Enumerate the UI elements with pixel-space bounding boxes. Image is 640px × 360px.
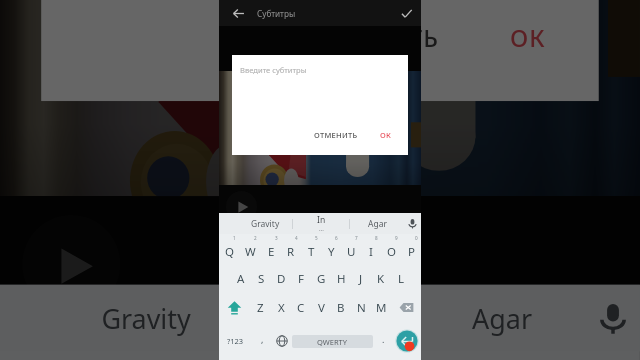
button[interactable]: Back — [225, 0, 251, 26]
staticText: Q — [225, 244, 234, 260]
staticText: . — [382, 333, 385, 345]
button[interactable]: X — [271, 293, 291, 322]
button[interactable]: 3 — [261, 234, 281, 264]
button[interactable]: D — [271, 264, 291, 293]
staticText: ?123 — [227, 336, 244, 346]
button[interactable]: Enter — [393, 322, 421, 360]
staticText: H — [337, 271, 346, 287]
button[interactable]: M — [371, 293, 391, 322]
button[interactable]: In — [234, 285, 412, 351]
button[interactable]: Agar — [350, 213, 404, 234]
button[interactable]: 4 — [196, 351, 260, 360]
button[interactable]: ?123 — [219, 322, 252, 360]
staticText: 5 — [315, 235, 318, 241]
button[interactable]: F — [291, 264, 311, 293]
staticText: 6 — [335, 235, 338, 241]
staticText: In — [317, 214, 326, 226]
staticText: ОТМЕНИТЬ — [301, 22, 440, 53]
button[interactable]: Voice input — [404, 213, 421, 234]
button[interactable]: G — [311, 264, 331, 293]
button[interactable]: 4 — [281, 234, 301, 264]
staticText: ··· — [319, 226, 324, 234]
staticText: C — [297, 300, 305, 316]
button[interactable]: A — [230, 264, 251, 293]
staticText: In — [310, 288, 339, 326]
button[interactable]: 9 — [381, 234, 401, 264]
staticText: D — [277, 271, 286, 287]
button[interactable]: 8 — [361, 234, 381, 264]
staticText: K — [377, 271, 385, 287]
button[interactable]: L — [391, 264, 411, 293]
button[interactable]: 6 — [321, 234, 341, 264]
staticText: F — [298, 271, 304, 287]
staticText: Agar — [368, 218, 387, 230]
button[interactable]: Z — [250, 293, 271, 322]
button[interactable]: C — [291, 293, 311, 322]
button[interactable]: 1 — [219, 234, 240, 264]
staticText: W — [245, 244, 256, 260]
button[interactable]: , — [252, 322, 272, 360]
staticText: L — [398, 271, 405, 287]
button[interactable]: ОТМЕНИТЬ — [288, 12, 453, 63]
button[interactable]: Agar — [415, 285, 586, 351]
button[interactable]: . — [373, 322, 393, 360]
button[interactable]: Voice input — [586, 285, 640, 351]
button[interactable]: Shift — [219, 293, 250, 322]
button[interactable]: 7 — [386, 351, 450, 360]
button[interactable]: Gravity — [239, 213, 292, 234]
staticText: Z — [257, 300, 264, 316]
staticText: 1 — [233, 235, 236, 241]
button[interactable]: In — [293, 213, 349, 234]
button[interactable]: B — [331, 293, 351, 322]
staticText: Введите субтитры — [240, 65, 307, 75]
button[interactable]: Backspace — [391, 293, 421, 322]
staticText: E — [268, 244, 275, 260]
staticText: QWERTY — [317, 337, 348, 347]
staticText: T — [308, 244, 315, 260]
button[interactable]: Done — [393, 0, 419, 26]
button[interactable]: ОК — [376, 127, 396, 143]
button[interactable]: ОК — [497, 12, 561, 63]
staticText: U — [347, 244, 356, 260]
button[interactable]: H — [331, 264, 351, 293]
button[interactable]: ОТМЕНИТЬ — [310, 127, 362, 143]
staticText: 7 — [355, 235, 358, 241]
staticText: R — [287, 244, 295, 260]
staticText: I — [369, 244, 373, 260]
button[interactable]: 5 — [301, 234, 321, 264]
button[interactable]: 7 — [341, 234, 361, 264]
staticText: S — [258, 271, 265, 287]
button[interactable]: N — [351, 293, 371, 322]
staticText: Gravity — [251, 218, 280, 230]
staticText: 4 — [295, 235, 298, 241]
button[interactable]: 0 — [401, 234, 421, 264]
staticText: 3 — [275, 235, 278, 241]
staticText: Y — [328, 244, 335, 260]
staticText: J — [359, 271, 363, 287]
button[interactable]: V — [311, 293, 331, 322]
button[interactable]: J — [351, 264, 371, 293]
staticText: O — [387, 244, 396, 260]
button[interactable]: S — [251, 264, 271, 293]
button[interactable]: K — [371, 264, 391, 293]
staticText: X — [278, 300, 285, 316]
button[interactable]: QWERTY — [292, 322, 373, 360]
button[interactable]: Gravity — [63, 285, 231, 351]
button[interactable]: Language — [272, 322, 292, 360]
button[interactable]: 2 — [240, 234, 261, 264]
